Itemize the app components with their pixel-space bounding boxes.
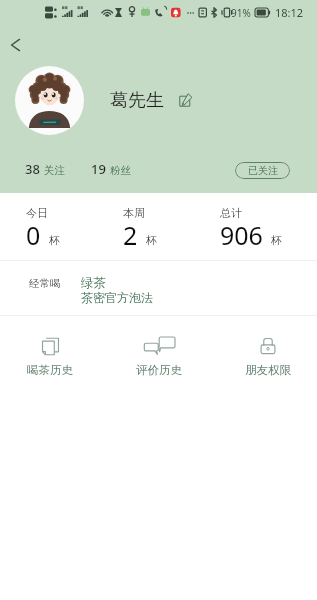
staticText: 粉丝 xyxy=(110,164,131,177)
button[interactable]: Back xyxy=(0,30,30,60)
button[interactable]: 19 xyxy=(91,160,131,178)
staticText: 本周 xyxy=(123,206,145,220)
staticText: 绿茶 xyxy=(81,275,106,291)
button[interactable]: Edit profile xyxy=(177,92,194,109)
button[interactable]: 38 xyxy=(25,160,65,178)
staticText: 喝茶历史 xyxy=(27,363,73,377)
staticText: 今日 xyxy=(26,206,48,220)
staticText: 杯 xyxy=(271,234,282,247)
staticText: 18:12 xyxy=(275,5,304,20)
button[interactable]: 绿茶 xyxy=(81,275,153,306)
button[interactable]: 评价历史 xyxy=(127,337,191,377)
staticText: 0 xyxy=(26,218,41,252)
staticText: 38 xyxy=(25,160,40,178)
staticText: 杯 xyxy=(49,234,60,247)
button[interactable]: 喝茶历史 xyxy=(18,337,82,377)
staticText: 经常喝 xyxy=(29,277,61,290)
staticText: 19 xyxy=(91,160,106,178)
staticText: 葛先生 xyxy=(110,89,164,112)
button[interactable]: 朋友权限 xyxy=(236,337,300,377)
staticText: 杯 xyxy=(146,234,157,247)
staticText: 906 xyxy=(220,218,263,252)
staticText: 总计 xyxy=(220,206,242,220)
staticText: 91% xyxy=(231,6,251,20)
staticText: 朋友权限 xyxy=(245,363,291,377)
staticText: 茶密官方泡法 xyxy=(81,290,153,305)
staticText: 已关注 xyxy=(248,164,278,177)
button[interactable]: Avatar xyxy=(15,66,84,135)
staticText: 2 xyxy=(123,218,138,252)
staticText: 评价历史 xyxy=(136,363,182,377)
staticText: 关注 xyxy=(44,164,65,177)
button[interactable]: 已关注 xyxy=(235,162,290,179)
